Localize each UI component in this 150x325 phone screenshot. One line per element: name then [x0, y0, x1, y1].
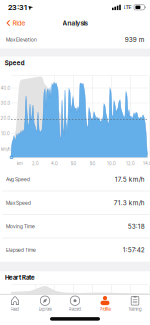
staticText: Avg Speed [6, 176, 30, 182]
staticText: 71.3 km/h [114, 199, 145, 207]
staticText: 8.0 [89, 161, 95, 166]
staticText: km/h [1, 146, 10, 152]
staticText: 40.0 [0, 85, 10, 91]
staticText: Ride [13, 19, 26, 27]
button[interactable]: Explore [30, 294, 59, 316]
staticText: Elapsed Time [6, 247, 36, 253]
staticText: 30.0 [0, 100, 10, 106]
staticText: Max Speed [6, 200, 31, 206]
staticText: Explore [38, 306, 51, 312]
staticText: 20.0 [0, 115, 10, 121]
staticText: Record [68, 306, 81, 312]
staticText: 2.0 [32, 161, 39, 166]
staticText: Analysis [62, 19, 87, 27]
staticText: Speed [5, 59, 25, 67]
button[interactable]: Profile [90, 294, 119, 316]
staticText: 6.0 [70, 161, 76, 166]
staticText: Profile [99, 306, 110, 312]
staticText: 1:57:42 [123, 246, 145, 254]
staticText: Heart Rate [5, 274, 35, 281]
staticText: Moving Time [6, 223, 35, 229]
staticText: LTE [123, 4, 131, 11]
button[interactable]: Ride [4, 16, 28, 29]
staticText: Training [128, 306, 142, 312]
staticText: 10.0 [1, 131, 10, 136]
button[interactable]: Training [120, 294, 149, 316]
staticText: 12.0 [126, 161, 135, 166]
staticText: Max Elevation [6, 36, 37, 43]
staticText: 14.0 [143, 161, 150, 166]
staticText: 4.0 [51, 161, 58, 166]
staticText: km [17, 161, 23, 166]
staticText: Feed [10, 306, 19, 312]
staticText: 10.0 [107, 161, 116, 166]
staticText: 23:31 [8, 3, 27, 12]
button[interactable]: Feed [0, 294, 29, 316]
button[interactable]: Record [60, 294, 89, 316]
staticText: 939 m [125, 36, 145, 43]
staticText: 17.5 km/h [115, 176, 145, 183]
staticText: 53:18 [128, 223, 145, 230]
